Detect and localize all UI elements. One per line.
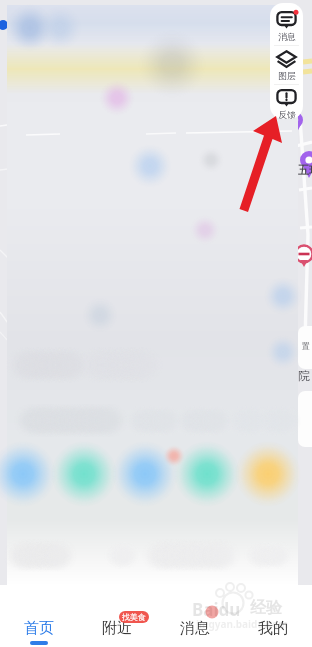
staticText: 消息: [180, 619, 210, 638]
staticText: 院: [298, 368, 310, 383]
button[interactable]: 首页: [0, 585, 78, 647]
staticText: 我的: [258, 619, 288, 638]
staticText: 反馈: [278, 109, 296, 119]
staticText: 经验: [250, 598, 282, 618]
staticText: 消息: [278, 31, 296, 42]
button[interactable]: 图层: [270, 46, 303, 84]
other: Pointer arrow: [0, 0, 312, 647]
staticText: 首页: [24, 619, 54, 638]
button[interactable]: 反馈: [270, 85, 303, 119]
staticText: Baidu: [192, 598, 241, 621]
button[interactable]: 消息: [156, 585, 234, 647]
staticText: 置: [302, 341, 310, 351]
button[interactable]: 附近: [78, 585, 156, 647]
button[interactable]: 我的: [234, 585, 312, 647]
staticText: 五环: [298, 163, 312, 177]
staticText: 图层: [278, 70, 296, 81]
staticText: 附近: [102, 619, 132, 638]
staticText: jingyan.baidu.com: [196, 617, 288, 631]
staticText: 找美食: [122, 612, 146, 622]
button[interactable]: 消息: [270, 7, 303, 45]
